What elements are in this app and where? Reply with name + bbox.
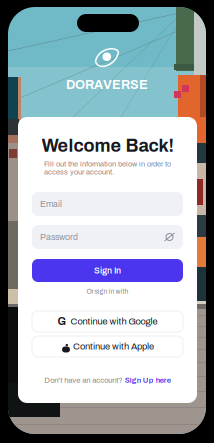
button[interactable]: G bbox=[32, 311, 183, 332]
staticText: Fill out the information below in order … bbox=[44, 160, 171, 176]
staticText: Continue with Google bbox=[70, 316, 157, 327]
button[interactable]: Continue with Apple bbox=[32, 336, 183, 357]
staticText: Don't have an account? bbox=[44, 376, 122, 384]
staticText: Or sign in with bbox=[86, 288, 128, 295]
staticText: Continue with Apple bbox=[73, 341, 154, 352]
button[interactable]: Don't have an account? bbox=[18, 376, 197, 384]
button[interactable]: Sign In bbox=[32, 259, 183, 282]
staticText: DORAVERSE bbox=[66, 78, 148, 92]
staticText: G bbox=[57, 316, 66, 327]
staticText: Sign Up here bbox=[125, 376, 171, 384]
staticText: Email bbox=[40, 199, 62, 209]
staticText: Password bbox=[40, 232, 78, 242]
staticText: Sign In bbox=[94, 266, 121, 275]
staticText: Welcome Back! bbox=[41, 136, 173, 156]
